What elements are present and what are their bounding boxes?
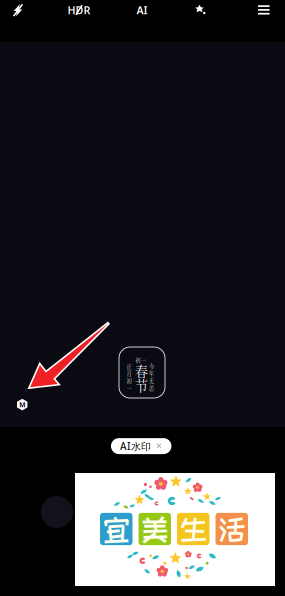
staticText: 生 xyxy=(179,514,207,544)
staticText: 一 xyxy=(126,384,131,392)
staticText: 春 xyxy=(135,361,148,380)
staticText: 年 xyxy=(149,370,154,377)
button[interactable]: AI xyxy=(126,0,158,23)
staticText: HDR xyxy=(67,3,90,17)
staticText: M xyxy=(19,400,25,409)
staticText: 活 xyxy=(218,514,246,544)
staticText: 月 xyxy=(126,370,131,377)
staticText: 初 xyxy=(126,377,131,385)
staticText: 一 xyxy=(141,356,146,364)
staticText: ✕ xyxy=(155,441,162,451)
button[interactable]: HDR off xyxy=(62,0,96,23)
button[interactable]: Menu xyxy=(248,0,280,23)
button[interactable]: Spring Festival watermark xyxy=(119,347,165,398)
staticText: 节 xyxy=(135,376,148,395)
staticText: 宜 xyxy=(102,514,130,544)
staticText: 正 xyxy=(126,362,131,370)
staticText: AI xyxy=(136,3,147,17)
staticText: 美 xyxy=(141,514,169,544)
button[interactable]: AI水印 xyxy=(111,438,171,454)
staticText: 无 xyxy=(149,377,154,385)
button[interactable]: Sticker preview xyxy=(75,473,275,586)
button[interactable]: Flash off xyxy=(2,0,34,23)
staticText: 恙 xyxy=(149,384,154,392)
button[interactable]: Effects xyxy=(184,0,216,23)
staticText: 今 xyxy=(149,362,154,370)
staticText: AI水印 xyxy=(120,439,151,453)
staticText: 初 xyxy=(135,356,140,364)
